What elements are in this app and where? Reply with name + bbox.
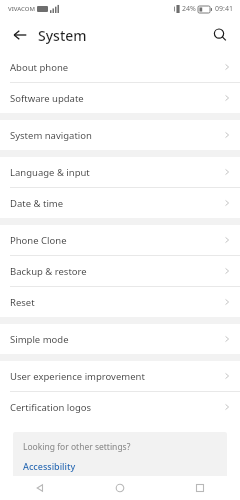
- button[interactable]: System navigation: [0, 120, 240, 150]
- staticText: Backup & restore: [10, 265, 223, 278]
- button[interactable]: Backup & restore: [0, 256, 240, 286]
- button[interactable]: Date & time: [0, 188, 240, 218]
- button[interactable]: Certification logos: [0, 392, 240, 422]
- staticText: Phone Clone: [10, 234, 223, 247]
- button[interactable]: User experience improvement: [0, 361, 240, 391]
- button[interactable]: Phone Clone: [0, 225, 240, 255]
- button[interactable]: Back: [0, 476, 80, 500]
- staticText: 09:41: [215, 4, 233, 14]
- staticText: Language & input: [10, 166, 223, 179]
- staticText: Reset: [10, 296, 223, 309]
- staticText: System: [38, 26, 87, 45]
- button[interactable]: Language & input: [0, 157, 240, 187]
- staticText: Software update: [10, 92, 223, 105]
- button[interactable]: Home: [80, 476, 160, 500]
- staticText: System navigation: [10, 129, 223, 142]
- button[interactable]: Accessibility: [23, 460, 76, 472]
- button[interactable]: Software update: [0, 83, 240, 113]
- staticText: Date & time: [10, 197, 223, 210]
- staticText: 24%: [182, 4, 196, 14]
- button[interactable]: Simple mode: [0, 324, 240, 354]
- staticText: Simple mode: [10, 333, 223, 346]
- button[interactable]: Search: [206, 21, 234, 49]
- staticText: About phone: [10, 61, 223, 74]
- staticText: User experience improvement: [10, 370, 223, 383]
- staticText: VIVACOM: [8, 5, 35, 13]
- button[interactable]: Back: [6, 21, 34, 49]
- button[interactable]: Reset: [0, 287, 240, 317]
- button[interactable]: Recent apps: [160, 476, 240, 500]
- staticText: Looking for other settings?: [23, 441, 131, 453]
- button[interactable]: About phone: [0, 52, 240, 82]
- button[interactable]: Looking for other settings?: [13, 432, 227, 481]
- staticText: Certification logos: [10, 401, 223, 414]
